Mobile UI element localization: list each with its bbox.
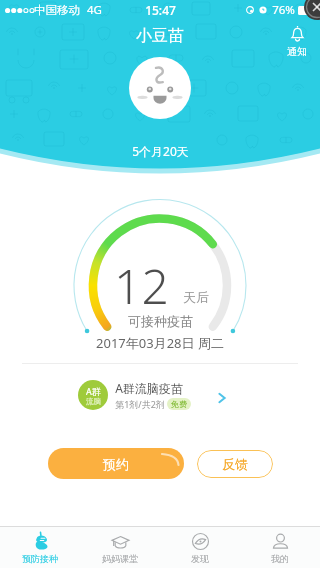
button[interactable]: 反馈 — [197, 450, 273, 478]
staticText: 15:47 — [145, 2, 176, 18]
staticText: 12 — [114, 253, 169, 318]
staticText: 反馈 — [222, 456, 248, 472]
button[interactable]: 我的 — [240, 527, 320, 568]
staticText: 5个月20天 — [132, 143, 189, 159]
button[interactable]: 宝宝头像 — [129, 57, 191, 119]
staticText: 妈妈课堂 — [102, 553, 138, 564]
staticText: A群流脑疫苗 — [115, 380, 183, 396]
staticText: 发现 — [191, 553, 209, 564]
staticText: 预防接种 — [22, 553, 58, 564]
staticText: 第1剂/共2剂 — [115, 398, 165, 410]
staticText: 天后 — [183, 289, 209, 305]
staticText: A群 — [86, 385, 101, 397]
button[interactable]: 妈妈课堂 — [80, 527, 160, 568]
button[interactable]: A群 — [78, 377, 228, 413]
staticText: 2017年03月28日 周二 — [96, 334, 224, 352]
staticText: 76% — [272, 2, 295, 18]
button[interactable]: 发现 — [160, 527, 240, 568]
button[interactable]: 预防接种 — [0, 527, 80, 568]
staticText: 预约 — [103, 456, 129, 472]
staticText: 小豆苗 — [136, 26, 184, 46]
staticText: 免费 — [171, 399, 187, 409]
button[interactable]: 预约 — [48, 448, 184, 479]
staticText: 中国移动 — [34, 3, 80, 17]
staticText: 4G — [87, 2, 102, 18]
staticText: 通知 — [287, 45, 307, 58]
staticText: 可接种疫苗 — [128, 313, 193, 329]
staticText: 我的 — [271, 553, 289, 564]
staticText: 流脑 — [86, 397, 101, 406]
button[interactable]: 通知 — [281, 23, 313, 60]
